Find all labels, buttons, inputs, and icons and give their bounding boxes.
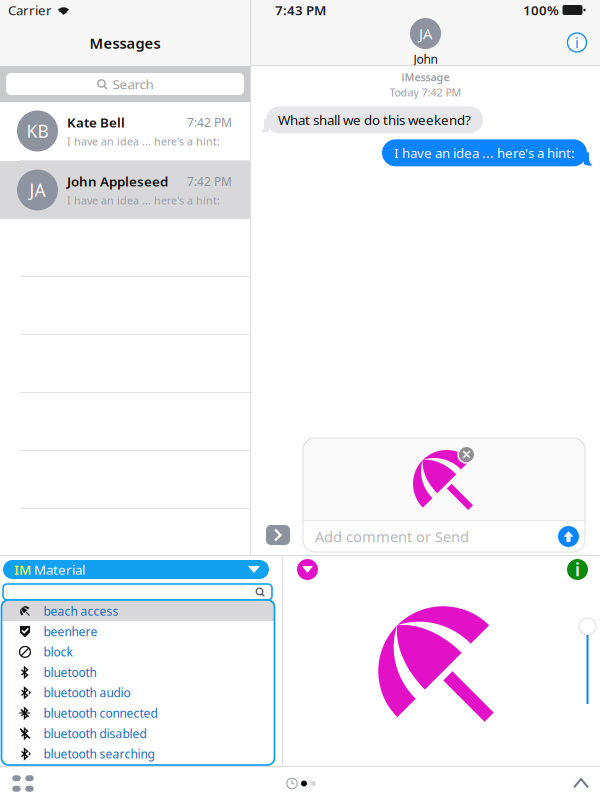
button[interactable]: Expand	[565, 767, 597, 800]
button[interactable]: beach access	[1, 601, 274, 621]
staticText: beach access	[43, 603, 118, 619]
staticText: bluetooth connected	[43, 705, 157, 721]
staticText: KB	[26, 119, 48, 142]
staticText: i	[575, 33, 579, 52]
staticText: i	[575, 558, 580, 581]
button[interactable]: beenhere	[1, 621, 274, 642]
staticText: Today 7:42 PM	[389, 85, 461, 99]
staticText: John Appleseed	[67, 173, 168, 190]
staticText: Messages	[89, 33, 160, 53]
button[interactable]: bluetooth searching	[1, 744, 274, 764]
button[interactable]: IM	[3, 560, 269, 579]
button[interactable]: Collapse keyboard	[297, 559, 318, 580]
button[interactable]: JA	[0, 161, 250, 219]
button[interactable]: bluetooth	[1, 662, 274, 682]
button[interactable]: Remove sticker	[459, 447, 474, 462]
staticText: Carrier	[8, 1, 52, 19]
staticText: beenhere	[43, 623, 97, 639]
staticText: I have an idea ... here's a hint:	[67, 134, 220, 148]
staticText: JA	[29, 178, 45, 201]
staticText: Search	[112, 75, 153, 93]
staticText: 7:42 PM	[187, 173, 232, 189]
staticText: I have an idea ... here's a hint:	[394, 144, 575, 162]
staticText: bluetooth	[43, 664, 96, 680]
staticText: iMessage	[401, 70, 449, 84]
staticText: Add comment or Send	[315, 527, 469, 546]
staticText: Material	[31, 561, 85, 578]
button[interactable]: bluetooth audio	[1, 682, 274, 703]
staticText: John	[413, 51, 437, 67]
staticText: What shall we do this weekend?	[278, 111, 471, 129]
button[interactable]: App drawer	[266, 525, 290, 545]
button[interactable]	[3, 584, 272, 600]
staticText: bluetooth audio	[43, 685, 130, 701]
staticText: 100%	[523, 1, 559, 19]
staticText: bluetooth searching	[43, 746, 154, 762]
button[interactable]: bluetooth disabled	[1, 723, 274, 744]
button[interactable]: Details	[560, 25, 594, 59]
staticText: IM	[14, 561, 31, 578]
button[interactable]: KB	[0, 102, 250, 160]
button[interactable]: Send	[558, 526, 579, 547]
button[interactable]: Search	[6, 73, 244, 95]
staticText: block	[43, 644, 72, 660]
button[interactable]: bluetooth connected	[1, 703, 274, 723]
staticText: bluetooth disabled	[43, 725, 146, 741]
button[interactable]: Info	[567, 559, 588, 580]
staticText: Kate Bell	[67, 114, 125, 131]
button[interactable]: App drawer	[2, 767, 44, 800]
staticText: I have an idea ... here's a hint:	[67, 193, 220, 207]
button[interactable]: block	[1, 642, 274, 662]
staticText: 7:42 PM	[187, 114, 232, 130]
staticText: 7:43 PM	[275, 1, 326, 19]
staticText: JA	[419, 24, 432, 43]
